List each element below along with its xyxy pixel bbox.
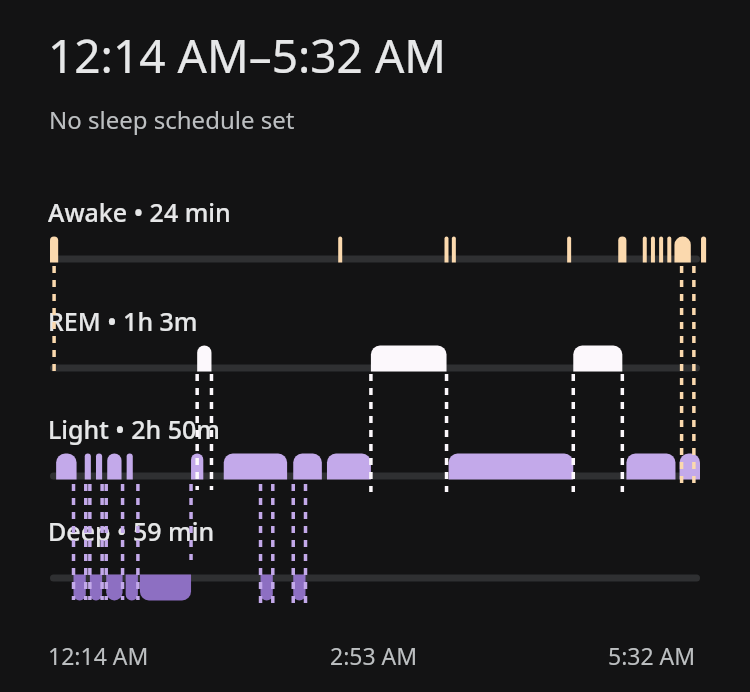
button[interactable]: Sleep stages chart: [0, 0, 750, 692]
